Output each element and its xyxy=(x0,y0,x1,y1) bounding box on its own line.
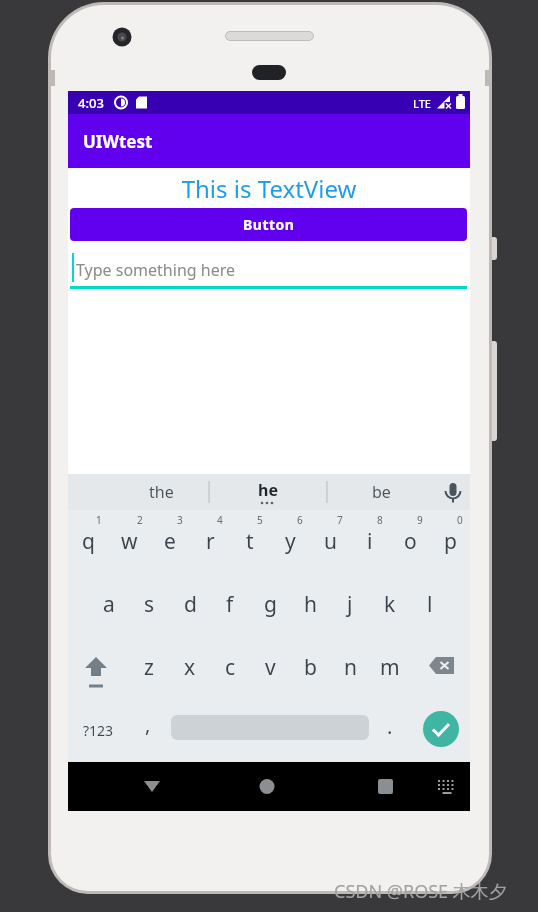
button[interactable] xyxy=(410,636,470,699)
staticText: 5 xyxy=(257,513,263,527)
button[interactable]: i xyxy=(350,510,390,573)
staticText: 8 xyxy=(377,513,383,527)
staticText: 7 xyxy=(337,513,343,527)
staticText: Type something here xyxy=(76,259,235,281)
button[interactable]: ?123 xyxy=(68,699,128,762)
staticText: This is TextView xyxy=(68,172,470,205)
button[interactable]: t xyxy=(230,510,270,573)
button[interactable]: z xyxy=(128,636,169,699)
staticText: k xyxy=(384,590,396,619)
button[interactable] xyxy=(247,767,287,807)
staticText: u xyxy=(324,527,337,556)
staticText: v xyxy=(265,653,276,682)
staticText: d xyxy=(184,590,197,619)
staticText: q xyxy=(82,527,95,556)
button[interactable]: Button xyxy=(70,208,467,241)
button[interactable]: Type something here xyxy=(68,248,470,288)
button[interactable]: c xyxy=(210,636,250,699)
button[interactable]: q xyxy=(68,510,109,573)
staticText: n xyxy=(344,653,357,682)
button[interactable]: d xyxy=(170,573,210,636)
button[interactable]: f xyxy=(210,573,250,636)
staticText: 4:03 xyxy=(78,94,104,112)
staticText: 2 xyxy=(137,513,143,527)
staticText: m xyxy=(380,653,400,682)
staticText: y xyxy=(285,527,296,556)
staticText: h xyxy=(304,590,317,619)
button[interactable]: w xyxy=(109,510,150,573)
button[interactable]: s xyxy=(129,573,170,636)
button[interactable] xyxy=(423,711,459,747)
staticText: 6 xyxy=(297,513,303,527)
button[interactable] xyxy=(425,767,465,807)
staticText: the xyxy=(149,481,174,503)
button[interactable]: a xyxy=(88,573,129,636)
button[interactable]: b xyxy=(290,636,330,699)
staticText: p xyxy=(444,527,457,556)
button[interactable]: j xyxy=(330,573,370,636)
button[interactable]: k xyxy=(370,573,410,636)
button[interactable]: h xyxy=(290,573,330,636)
button[interactable]: the xyxy=(68,474,209,510)
staticText: LTE xyxy=(413,96,431,111)
staticText: Button xyxy=(243,215,295,234)
button[interactable]: be xyxy=(327,474,435,510)
button[interactable]: , xyxy=(128,699,168,762)
staticText: j xyxy=(347,590,353,619)
button[interactable]: l xyxy=(410,573,450,636)
staticText: r xyxy=(206,527,215,556)
staticText: ?123 xyxy=(83,721,114,740)
staticText: he xyxy=(258,479,278,501)
button[interactable]: . xyxy=(370,699,410,762)
staticText: b xyxy=(304,653,317,682)
staticText: 1 xyxy=(96,513,102,527)
staticText: g xyxy=(264,590,277,619)
button[interactable]: r xyxy=(190,510,230,573)
button[interactable]: y xyxy=(270,510,310,573)
staticText: UIWtest xyxy=(83,130,153,153)
button[interactable]: u xyxy=(310,510,350,573)
button[interactable]: n xyxy=(330,636,370,699)
staticText: i xyxy=(367,527,373,556)
staticText: s xyxy=(144,590,155,619)
button[interactable]: o xyxy=(390,510,430,573)
staticText: . xyxy=(387,713,393,740)
button[interactable]: m xyxy=(370,636,410,699)
staticText: w xyxy=(121,527,138,556)
staticText: , xyxy=(145,711,151,738)
staticText: 9 xyxy=(417,513,423,527)
button[interactable] xyxy=(68,636,128,699)
staticText: CSDN @ROSE 木木夕 xyxy=(334,879,507,904)
staticText: 4 xyxy=(217,513,223,527)
staticText: o xyxy=(404,527,417,556)
button[interactable] xyxy=(132,767,172,807)
button[interactable]: p xyxy=(430,510,470,573)
staticText: e xyxy=(164,527,176,556)
staticText: x xyxy=(184,653,196,682)
button[interactable]: g xyxy=(250,573,290,636)
staticText: z xyxy=(144,653,154,682)
staticText: l xyxy=(427,590,433,619)
button[interactable] xyxy=(365,767,405,807)
button[interactable]: v xyxy=(250,636,290,699)
staticText: 0 xyxy=(457,513,463,527)
staticText: a xyxy=(103,590,115,619)
staticText: f xyxy=(226,590,234,619)
staticText: t xyxy=(246,527,254,556)
staticText: c xyxy=(225,653,236,682)
staticText: be xyxy=(372,481,391,503)
button[interactable]: e xyxy=(150,510,190,573)
button[interactable]: x xyxy=(169,636,210,699)
staticText: 3 xyxy=(177,513,183,527)
button[interactable]: he xyxy=(209,474,327,510)
